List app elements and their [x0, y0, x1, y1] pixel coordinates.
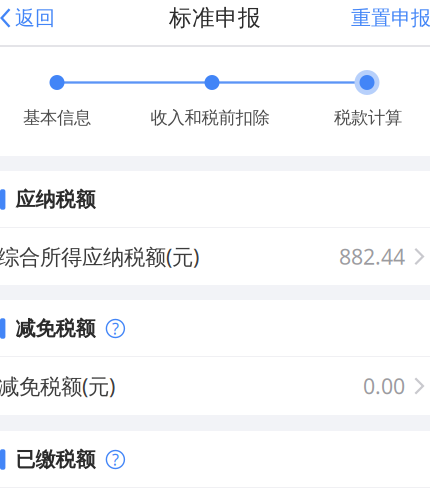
staticText: 重置申报: [351, 6, 430, 30]
button[interactable]: 返回: [0, 11, 55, 36]
button[interactable]: 综合所得应纳税额(元): [0, 228, 430, 285]
staticText: 综合所得应纳税额(元): [0, 242, 199, 271]
staticText: 税款计算: [334, 107, 402, 128]
button[interactable]: 重置申报: [351, 11, 430, 36]
staticText: 0.00: [363, 372, 405, 400]
staticText: 减免税额: [15, 316, 95, 341]
button[interactable]: 减免税额说明: [105, 318, 125, 338]
button[interactable]: 减免税额(元): [0, 357, 430, 415]
staticText: ?: [112, 318, 119, 339]
staticText: 减免税额(元): [0, 372, 115, 400]
staticText: 基本信息: [23, 107, 91, 128]
staticText: 应纳税额: [15, 187, 95, 212]
staticText: 882.44: [339, 242, 405, 271]
staticText: 标准申报: [169, 4, 261, 32]
staticText: 已缴税额: [15, 447, 95, 472]
staticText: 收入和税前扣除: [150, 107, 269, 128]
staticText: 返回: [15, 6, 55, 30]
button[interactable]: 已缴税额说明: [105, 449, 125, 469]
staticText: ?: [112, 449, 119, 470]
